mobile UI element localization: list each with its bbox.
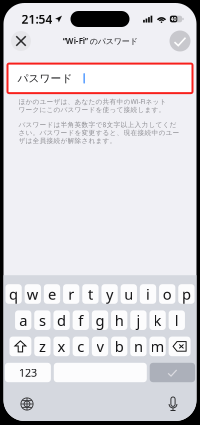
button[interactable]: m xyxy=(149,337,166,356)
staticText: 123 xyxy=(19,365,37,380)
button[interactable]: n xyxy=(130,337,146,356)
button[interactable]: h xyxy=(111,310,127,330)
staticText: パスワードは半角英数字で8文字以上入力してください。パスワードを変更すると、現在… xyxy=(18,120,179,145)
staticText: z xyxy=(39,337,46,356)
button[interactable]: f xyxy=(73,310,89,330)
staticText: s xyxy=(39,310,46,330)
staticText: b xyxy=(115,337,124,356)
button[interactable]: 完了 xyxy=(169,30,190,51)
staticText: h xyxy=(115,310,124,330)
button[interactable]: b xyxy=(111,337,127,356)
button[interactable]: 次のキーボード xyxy=(17,394,36,413)
staticText: x xyxy=(58,337,66,356)
button[interactable]: q xyxy=(5,284,22,304)
staticText: f xyxy=(78,310,83,330)
button[interactable]: y xyxy=(101,284,118,304)
button[interactable]: u xyxy=(121,284,137,304)
staticText: v xyxy=(96,337,103,356)
button[interactable]: d xyxy=(53,310,70,330)
button[interactable]: p xyxy=(178,284,194,304)
button[interactable]: k xyxy=(149,310,166,330)
button[interactable]: j xyxy=(130,310,146,330)
button[interactable]: e xyxy=(44,284,60,304)
button[interactable]: l xyxy=(169,310,185,330)
button[interactable]: 音声入力 xyxy=(163,394,182,413)
staticText: 40 xyxy=(171,15,177,23)
staticText: j xyxy=(136,310,140,330)
staticText: m xyxy=(151,337,165,356)
staticText: o xyxy=(163,284,172,304)
staticText: n xyxy=(134,337,143,356)
button[interactable]: s xyxy=(34,310,50,330)
staticText: ほかのユーザは、あなたの共有中のWi-Fiネットワークにこのパスワードを使って接… xyxy=(18,97,166,114)
button[interactable]: z xyxy=(34,337,50,356)
button[interactable]: a xyxy=(15,310,31,330)
button[interactable]: c xyxy=(73,337,89,356)
staticText: 21:54 xyxy=(21,11,52,27)
staticText: g xyxy=(95,310,104,330)
staticText: u xyxy=(124,284,133,304)
button[interactable]: o xyxy=(159,284,175,304)
staticText: y xyxy=(106,284,113,304)
button[interactable]: i xyxy=(140,284,156,304)
staticText: k xyxy=(154,310,162,330)
staticText: d xyxy=(57,310,66,330)
button[interactable]: Join xyxy=(150,363,195,382)
staticText: i xyxy=(146,284,150,304)
button[interactable]: v xyxy=(92,337,108,356)
button[interactable]: Shift xyxy=(9,337,31,356)
button[interactable]: t xyxy=(82,284,98,304)
staticText: l xyxy=(175,310,179,330)
button[interactable]: Delete xyxy=(169,337,190,356)
staticText: r xyxy=(68,284,74,304)
button[interactable]: 123 xyxy=(5,363,51,382)
staticText: p xyxy=(182,284,191,304)
staticText: q xyxy=(9,284,18,304)
button[interactable]: w xyxy=(25,284,41,304)
staticText: e xyxy=(48,284,56,304)
button[interactable]: g xyxy=(92,310,108,330)
staticText: パスワード xyxy=(17,72,72,85)
staticText: c xyxy=(77,337,84,356)
staticText: a xyxy=(19,310,27,330)
button[interactable]: 閉じる xyxy=(11,31,31,51)
button[interactable]: x xyxy=(53,337,70,356)
staticText: w xyxy=(27,284,39,304)
button[interactable]: r xyxy=(63,284,79,304)
staticText: t xyxy=(88,284,93,304)
staticText: “Wi-Fi” のパスワード xyxy=(63,36,138,46)
